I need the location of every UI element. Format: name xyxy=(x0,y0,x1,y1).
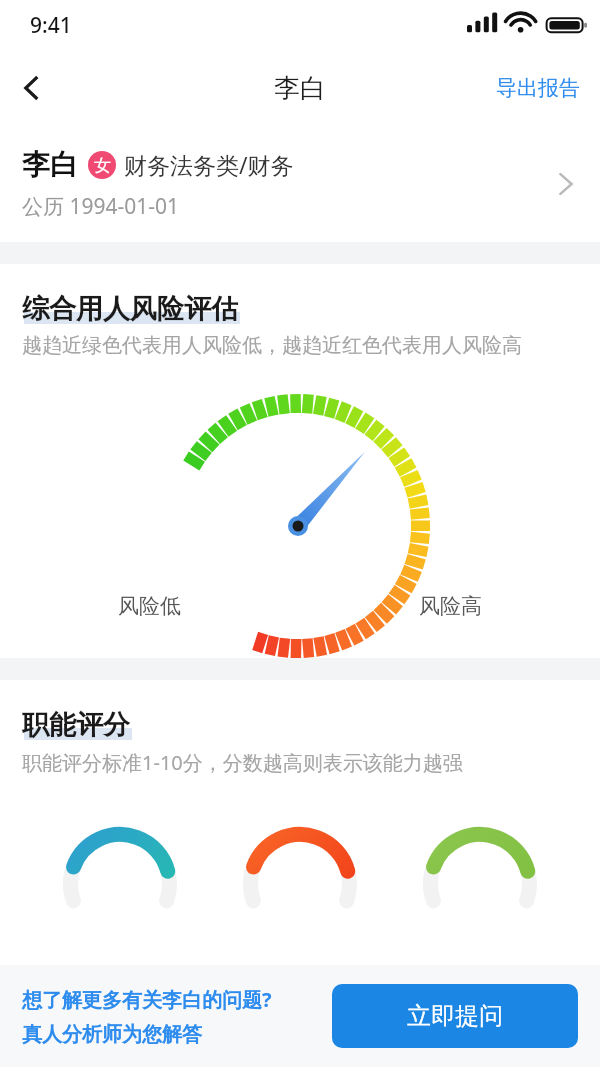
staticText: 风险高 xyxy=(419,593,482,619)
button[interactable]: 李白 xyxy=(0,126,600,242)
staticText: 公历 1994-01-01 xyxy=(22,192,180,221)
staticText: 综合用人风险评估 xyxy=(22,292,238,326)
button[interactable]: 导出报告 xyxy=(476,61,600,115)
staticText: 财务法务类/财务 xyxy=(124,149,294,180)
staticText: 立即提问 xyxy=(407,1001,503,1031)
staticText: 李白 xyxy=(274,72,326,105)
staticText: 想了解更多有关李白的问题? xyxy=(22,986,272,1013)
staticText: 职能评分 xyxy=(22,708,130,742)
button[interactable]: 立即提问 xyxy=(332,984,578,1048)
staticText: 越趋近绿色代表用人风险低，越趋近红色代表用人风险高 xyxy=(22,333,522,358)
button[interactable]: Back xyxy=(0,56,64,120)
staticText: 李白 xyxy=(22,147,78,182)
staticText: 风险低 xyxy=(118,593,181,619)
staticText: 职能评分标准1-10分，分数越高则表示该能力越强 xyxy=(22,749,463,776)
staticText: 导出报告 xyxy=(496,75,580,101)
staticText: 真人分析师为您解答 xyxy=(22,1022,202,1047)
staticText: 女 xyxy=(94,155,111,176)
staticText: 9:41 xyxy=(30,11,72,40)
